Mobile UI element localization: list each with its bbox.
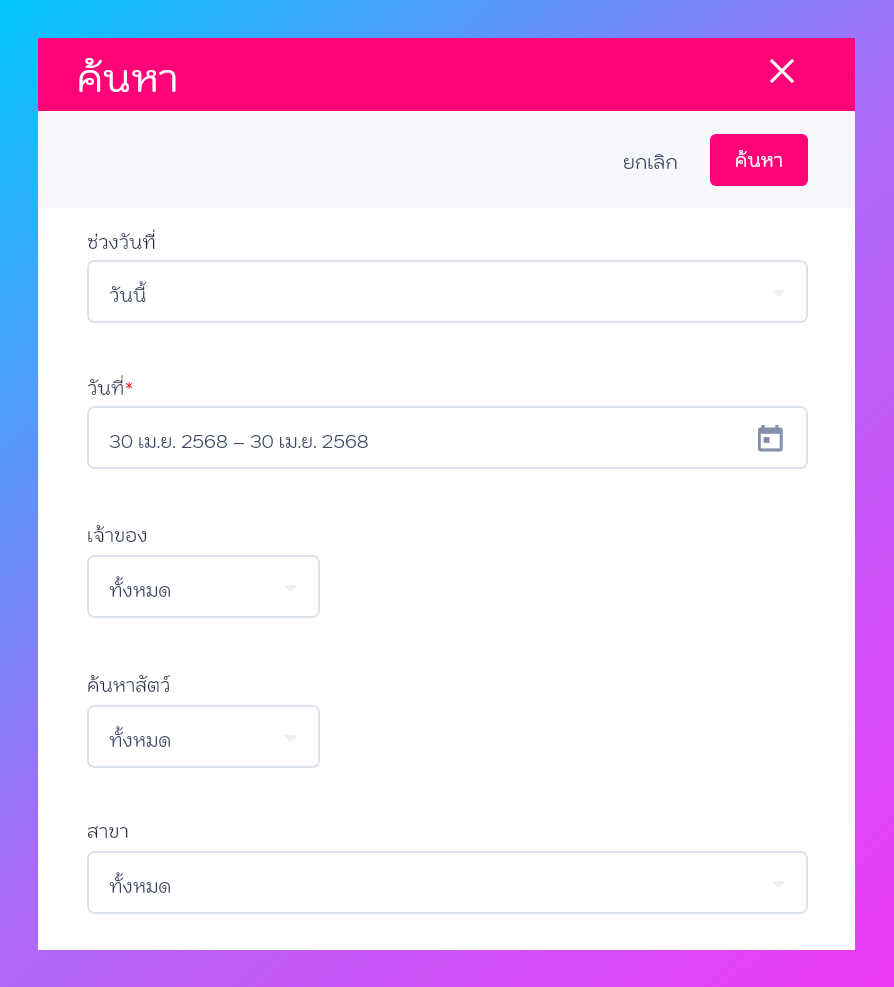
button[interactable]: 30 เม.ย. 2568 – 30 เม.ย. 2568 bbox=[87, 406, 808, 469]
staticText: ค้นหา bbox=[735, 149, 783, 172]
staticText: 30 เม.ย. 2568 – 30 เม.ย. 2568 bbox=[109, 429, 369, 453]
staticText: ทั้งหมด bbox=[109, 578, 172, 602]
button[interactable]: ยกเลิก bbox=[610, 137, 691, 183]
staticText: ทั้งหมด bbox=[109, 728, 172, 752]
staticText: ทั้งหมด bbox=[109, 874, 172, 898]
button[interactable]: ทั้งหมด bbox=[87, 851, 808, 914]
button[interactable]: วันนี้ bbox=[87, 260, 808, 323]
button[interactable]: Close bbox=[763, 52, 801, 90]
staticText: ช่วงวันที่ bbox=[87, 230, 156, 254]
staticText: * bbox=[125, 376, 134, 400]
staticText: ยกเลิก bbox=[623, 150, 678, 174]
staticText: ค้นหาสัตว์ bbox=[87, 673, 171, 697]
staticText: ค้นหา bbox=[77, 53, 178, 102]
staticText: เจ้าของ bbox=[87, 523, 148, 547]
staticText: สาขา bbox=[87, 819, 129, 843]
button[interactable]: ทั้งหมด bbox=[87, 705, 320, 768]
staticText: วันนี้ bbox=[109, 283, 147, 307]
staticText: วันที่ bbox=[87, 376, 125, 400]
button[interactable]: ทั้งหมด bbox=[87, 555, 320, 618]
button[interactable]: ค้นหา bbox=[710, 134, 808, 186]
